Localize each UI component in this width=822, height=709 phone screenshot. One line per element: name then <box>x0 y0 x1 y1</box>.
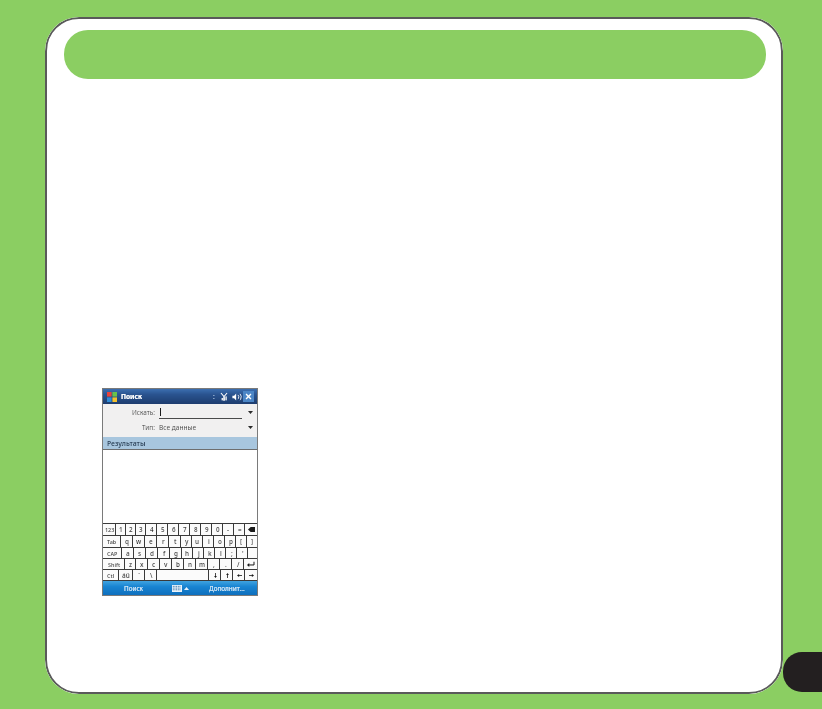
button[interactable]: Type dropdown <box>245 421 255 434</box>
button[interactable]: Дополнит... <box>197 581 257 595</box>
staticText: u <box>195 537 200 546</box>
button[interactable]: 9 <box>201 524 212 535</box>
button[interactable]: [ <box>236 536 247 547</box>
button[interactable]: z <box>125 559 136 569</box>
button[interactable]: r <box>157 536 169 547</box>
button[interactable]: - <box>223 524 234 535</box>
staticText: Поиск <box>124 584 143 593</box>
staticText: 6 <box>172 525 176 534</box>
button[interactable]: q <box>121 536 133 547</box>
staticText: 7 <box>183 525 187 534</box>
button[interactable]: Signal strength <box>219 392 229 402</box>
button[interactable]: CAP <box>103 548 122 558</box>
button[interactable]: . <box>220 559 232 569</box>
staticText: Поиск <box>121 392 143 401</box>
button[interactable]: \ <box>145 570 157 580</box>
button[interactable]: b <box>172 559 184 569</box>
button[interactable]: y <box>181 536 192 547</box>
staticText: 8 <box>194 525 198 534</box>
button[interactable]: = <box>234 524 245 535</box>
button[interactable]: Volume <box>231 392 241 402</box>
button[interactable]: Close <box>243 391 254 402</box>
staticText: ` <box>138 571 141 580</box>
staticText: z <box>129 560 133 569</box>
button[interactable]: t <box>169 536 181 547</box>
staticText: e <box>149 537 153 546</box>
staticText: Искать: <box>132 408 155 417</box>
staticText: 123 <box>105 526 115 533</box>
button[interactable]: 123 <box>103 524 116 535</box>
button[interactable]: c <box>148 559 160 569</box>
staticText: r <box>162 537 165 546</box>
staticText: Дополнит... <box>209 584 245 593</box>
button[interactable]: rt <box>245 570 257 580</box>
staticText: ; <box>231 549 233 558</box>
button[interactable]: n <box>184 559 196 569</box>
staticText: áü <box>122 571 130 580</box>
button[interactable]: ; <box>226 548 237 558</box>
button[interactable]: ' <box>237 548 248 558</box>
button[interactable]: s <box>134 548 146 558</box>
button[interactable]: 0 <box>212 524 223 535</box>
button[interactable]: Ctl <box>103 570 119 580</box>
button[interactable]: Результаты <box>103 437 257 449</box>
button[interactable]: ] <box>247 536 257 547</box>
button[interactable]: 6 <box>168 524 179 535</box>
button[interactable]: g <box>170 548 182 558</box>
button[interactable]: k <box>204 548 215 558</box>
button[interactable]: 4 <box>146 524 157 535</box>
button[interactable]: lt <box>233 570 245 580</box>
button[interactable]: o <box>214 536 225 547</box>
staticText: ] <box>251 537 254 546</box>
button[interactable]: dn <box>209 570 221 580</box>
button[interactable]: áü <box>119 570 133 580</box>
button[interactable] <box>159 406 242 419</box>
button[interactable]: f <box>158 548 170 558</box>
button[interactable]: 2 <box>126 524 136 535</box>
button[interactable]: 5 <box>157 524 168 535</box>
button[interactable]: w <box>133 536 145 547</box>
button[interactable]: Tab <box>103 536 121 547</box>
button[interactable]: m <box>196 559 208 569</box>
button[interactable]: x <box>136 559 148 569</box>
button[interactable]: i <box>203 536 214 547</box>
button[interactable]: p <box>225 536 236 547</box>
staticText: w <box>136 537 142 546</box>
button[interactable]: Shift <box>103 559 125 569</box>
button[interactable]: / <box>232 559 244 569</box>
button[interactable]: 7 <box>179 524 190 535</box>
button[interactable]: e <box>145 536 157 547</box>
button[interactable]: Все данные <box>159 421 242 434</box>
button[interactable]: a <box>122 548 134 558</box>
button[interactable]: u <box>192 536 203 547</box>
button[interactable]: ` <box>133 570 145 580</box>
button[interactable] <box>157 570 209 580</box>
button[interactable]: bksp <box>245 524 257 535</box>
button[interactable]: Input panel <box>163 581 197 595</box>
button[interactable]: j <box>193 548 204 558</box>
staticText: Shift <box>108 561 121 568</box>
staticText: Tab <box>107 538 117 545</box>
staticText: \ <box>150 571 153 580</box>
button[interactable]: 3 <box>136 524 146 535</box>
button[interactable]: up <box>221 570 233 580</box>
staticText: : <box>213 392 215 401</box>
staticText: . <box>225 560 227 569</box>
button[interactable]: Search for dropdown <box>245 406 255 419</box>
staticText: 0 <box>216 525 220 534</box>
button[interactable]: h <box>182 548 193 558</box>
other: Page tab <box>783 652 822 692</box>
staticText: ' <box>242 549 244 558</box>
button[interactable]: d <box>146 548 158 558</box>
button[interactable]: l <box>215 548 226 558</box>
button[interactable]: Start <box>105 391 118 403</box>
staticText: 3 <box>139 525 143 534</box>
button[interactable]: enter <box>244 559 257 569</box>
staticText: 5 <box>161 525 165 534</box>
button[interactable]: 8 <box>190 524 201 535</box>
button[interactable]: 1 <box>116 524 126 535</box>
button[interactable]: , <box>208 559 220 569</box>
button[interactable]: Поиск <box>103 581 163 595</box>
button[interactable]: v <box>160 559 172 569</box>
